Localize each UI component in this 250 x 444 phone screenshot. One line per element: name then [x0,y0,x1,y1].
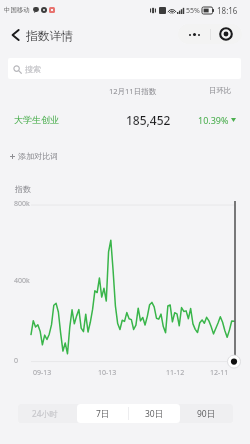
staticText: 指数详情 [26,29,74,44]
button[interactable]: 24小时 [18,404,72,423]
staticText: 0 [14,356,19,366]
staticText: 10.39% [198,114,229,126]
staticText: 24小时 [32,408,58,419]
staticText: 30日 [145,408,164,420]
button[interactable]: Back [5,25,25,45]
button[interactable]: 7日 [77,404,128,423]
staticText: 日环比 [209,86,232,95]
staticText: 添加对比词 [18,151,58,161]
button[interactable]: 搜索 [8,58,241,79]
button[interactable]: More [178,24,210,44]
staticText: 12月11日指数 [109,86,157,96]
staticText: 10-13 [98,368,117,378]
staticText: 7日 [96,408,110,420]
staticText: 搜索 [25,64,41,74]
button[interactable]: 90日 [180,404,233,423]
staticText: 09-13 [33,368,52,378]
staticText: 12-11 [210,368,229,378]
staticText: 185,452 [126,112,171,128]
button[interactable]: 添加对比词 [10,149,58,163]
button[interactable]: Close [210,24,242,44]
staticText: 指数 [15,184,31,194]
staticText: 18:16 [217,5,238,16]
staticText: 11-12 [166,368,185,378]
staticText: 800k [14,199,30,209]
button[interactable]: 大学生创业 [14,114,59,125]
staticText: 中国移动 [4,6,30,14]
button[interactable]: 30日 [128,404,180,423]
staticText: 55% [186,6,200,16]
staticText: 90日 [197,408,216,420]
staticText: 400k [14,276,30,286]
